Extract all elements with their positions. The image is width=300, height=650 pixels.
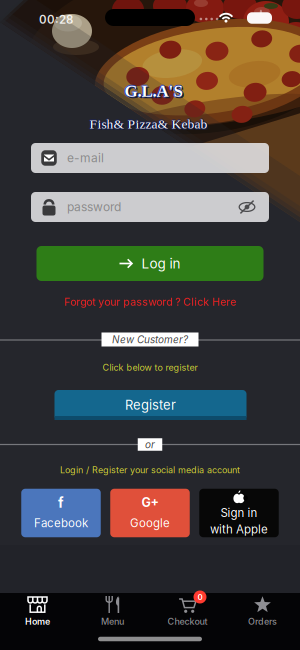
staticText: Orders bbox=[248, 616, 277, 627]
staticText: G.L.A'S bbox=[124, 83, 182, 101]
staticText: password bbox=[67, 200, 121, 214]
staticText: 00:28 bbox=[39, 12, 73, 26]
staticText: Forgot your password ? Click Here bbox=[64, 296, 236, 308]
staticText: Register bbox=[125, 397, 176, 413]
staticText: Fish& Pizza& Kebab bbox=[89, 117, 207, 132]
button[interactable]: Register bbox=[54, 390, 246, 420]
staticText: f bbox=[58, 494, 64, 511]
button[interactable]: 0 bbox=[150, 593, 225, 650]
staticText: G.L.A'S bbox=[123, 82, 181, 100]
button[interactable]: Home bbox=[0, 593, 75, 650]
staticText: Sign in bbox=[220, 506, 257, 520]
button[interactable]: Show password bbox=[238, 199, 269, 215]
staticText: 0 bbox=[197, 592, 202, 602]
staticText: or bbox=[145, 438, 155, 451]
button[interactable]: Menu bbox=[75, 593, 150, 650]
staticText: G.L.A'S bbox=[124, 81, 182, 99]
staticText: New Customer? bbox=[112, 333, 188, 346]
staticText: G.L.A'S bbox=[126, 83, 184, 102]
button[interactable]: Log in bbox=[36, 246, 263, 281]
button[interactable]: f bbox=[21, 489, 101, 537]
staticText: Fish& Pizza& Kebab bbox=[91, 118, 209, 133]
staticText: Log in bbox=[141, 255, 180, 272]
staticText: G.L.A'S bbox=[125, 82, 183, 100]
button[interactable]: Forgot your password ? Click Here bbox=[64, 296, 236, 308]
staticText: Checkout bbox=[167, 616, 207, 627]
staticText: Menu bbox=[101, 616, 124, 627]
staticText: Fish& Pizza& Kebab bbox=[90, 116, 208, 131]
button[interactable]: Sign in bbox=[199, 489, 279, 537]
staticText: e-mail bbox=[67, 151, 104, 165]
staticText: Fish& Pizza& Kebab bbox=[89, 115, 207, 130]
staticText: Click below to register bbox=[102, 362, 197, 373]
staticText: Home bbox=[25, 616, 50, 627]
staticText: G.L.A'S bbox=[124, 82, 182, 100]
staticText: Fish& Pizza& Kebab bbox=[89, 116, 207, 131]
button[interactable]: Orders bbox=[225, 593, 300, 650]
staticText: with Apple bbox=[210, 522, 268, 536]
staticText: G+ bbox=[141, 495, 158, 510]
staticText: Google bbox=[130, 516, 170, 530]
staticText: Login / Register your social media accou… bbox=[60, 465, 240, 475]
button[interactable]: G+ bbox=[110, 489, 190, 537]
staticText: Fish& Pizza& Kebab bbox=[88, 116, 206, 131]
staticText: Facebook bbox=[34, 516, 88, 530]
